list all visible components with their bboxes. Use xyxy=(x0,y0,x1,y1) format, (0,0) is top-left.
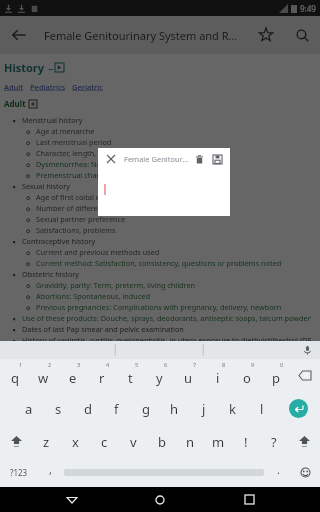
button[interactable]: Back xyxy=(55,487,89,512)
button[interactable]: Delete xyxy=(190,150,208,168)
button[interactable]: ! xyxy=(232,425,260,458)
button[interactable]: . xyxy=(266,458,290,487)
button[interactable]: s xyxy=(44,392,73,425)
staticText: m xyxy=(212,433,225,451)
button[interactable]: , xyxy=(38,458,62,487)
button[interactable]: 3 xyxy=(58,359,87,392)
button[interactable]: Use of these products: Douche, sprays, d… xyxy=(12,313,320,323)
button[interactable]: 9 xyxy=(232,359,261,392)
staticText: Obstetric history xyxy=(22,269,320,279)
button[interactable]: Satisfactions, problems xyxy=(26,225,320,235)
button[interactable]: Abortions: Spontaneous, induced xyxy=(26,291,320,301)
button[interactable]: Backspace xyxy=(290,359,320,392)
button[interactable]: Number of different partners xyxy=(26,203,320,213)
button[interactable]: Back xyxy=(0,16,38,54)
button[interactable]: Recent change in any of the following: B… xyxy=(12,346,320,356)
staticText: Recent change in any of the following: B… xyxy=(22,346,320,356)
staticText: l xyxy=(260,400,264,418)
button[interactable]: Search xyxy=(284,17,320,53)
staticText: Sexual partner preference xyxy=(36,214,320,224)
button[interactable]: Collapse section xyxy=(29,100,37,108)
button[interactable]: n xyxy=(176,425,204,458)
staticText: 5 xyxy=(135,361,139,368)
button[interactable]: Character, length, regularity of menses xyxy=(26,148,320,158)
button[interactable]: ? xyxy=(260,425,288,458)
button[interactable]: 2 xyxy=(29,359,58,392)
button[interactable]: Current and previous methods used xyxy=(26,247,320,257)
button[interactable]: Dysmenorrhea: Nature, severity, treatmen… xyxy=(26,159,320,169)
button[interactable]: j xyxy=(189,392,218,425)
staticText: Female Genitouri... xyxy=(124,154,190,164)
staticText: Abortions: Spontaneous, induced xyxy=(36,291,320,301)
button[interactable]: h xyxy=(160,392,189,425)
button[interactable]: x xyxy=(61,425,90,458)
button[interactable]: Save xyxy=(208,150,226,168)
staticText: v xyxy=(130,433,137,451)
staticText: , xyxy=(49,462,52,477)
button[interactable]: Space xyxy=(62,458,266,487)
button[interactable]: Contraceptive history xyxy=(12,236,320,246)
button[interactable]: Close xyxy=(102,150,120,168)
button[interactable]: Current method: Satisfaction, consistenc… xyxy=(26,258,320,268)
staticText: 9:49 xyxy=(300,3,316,14)
button[interactable]: Risk factors for HIV, safer sex practice… xyxy=(12,379,320,389)
button[interactable]: History of vaginitis, cystitis, pyelonep… xyxy=(12,335,320,345)
button[interactable]: Previous pregnancies: Complications with… xyxy=(26,302,320,312)
button[interactable]: Sexual partner preference xyxy=(26,214,320,224)
button[interactable]: Shift xyxy=(0,425,32,458)
button[interactable]: Favorite xyxy=(248,17,284,53)
button[interactable]: Obstetric history xyxy=(12,269,320,279)
button[interactable]: b xyxy=(148,425,176,458)
button[interactable]: Age at menarche xyxy=(26,126,320,136)
button[interactable]: Age of first coital experience xyxy=(26,192,320,202)
button[interactable]: 5 xyxy=(116,359,145,392)
button[interactable]: Last menstrual period xyxy=(26,137,320,147)
button[interactable]: z xyxy=(32,425,61,458)
staticText: h xyxy=(170,400,179,418)
button[interactable]: 7 xyxy=(174,359,203,392)
button[interactable]: Pediatrics xyxy=(30,82,66,92)
staticText: x xyxy=(72,433,79,451)
staticText: 2 xyxy=(48,361,52,368)
staticText: 6 xyxy=(164,361,168,368)
button[interactable]: a xyxy=(14,392,44,425)
button[interactable]: Sexual history xyxy=(12,181,320,191)
button[interactable]: Adult xyxy=(4,82,24,92)
staticText: Contraceptive history xyxy=(22,236,320,246)
button[interactable]: Premenstrual changes: Severity, treatmen… xyxy=(26,170,320,180)
button[interactable]: Home xyxy=(143,487,177,512)
button[interactable]: Gravidity, parity: Term, preterm, living… xyxy=(26,280,320,290)
button[interactable]: Geriatric xyxy=(72,82,103,92)
staticText: Risk factors for HIV, safer sex practice… xyxy=(22,379,320,389)
button[interactable]: l xyxy=(247,392,276,425)
button[interactable]: m xyxy=(204,425,232,458)
button[interactable]: History of gynecologic/urologic surgerie… xyxy=(12,357,320,367)
button[interactable]: v xyxy=(119,425,148,458)
button[interactable]: d xyxy=(73,392,102,425)
button[interactable]: Emoji xyxy=(290,458,320,487)
button[interactable]: 8 xyxy=(203,359,232,392)
button[interactable]: 4 xyxy=(87,359,116,392)
staticText: History of sexual assault, incest, stage… xyxy=(22,368,320,378)
staticText: Adult xyxy=(4,82,24,92)
staticText: Last menstrual period xyxy=(36,137,320,147)
button[interactable]: Dates of last Pap smear and pelvic exami… xyxy=(12,324,320,334)
button[interactable]: Enter xyxy=(276,392,320,425)
button[interactable]: k xyxy=(218,392,247,425)
staticText: 0 xyxy=(280,361,284,368)
button[interactable]: 0 xyxy=(261,359,290,392)
staticText: Previous pregnancies: Complications with… xyxy=(36,302,320,312)
button[interactable]: Menstrual history xyxy=(12,115,320,125)
button[interactable]: f xyxy=(102,392,131,425)
button[interactable]: History of sexual assault, incest, stage… xyxy=(12,368,320,378)
button[interactable]: Shift xyxy=(288,425,320,458)
button[interactable]: 1 xyxy=(0,359,29,392)
button[interactable]: 6 xyxy=(145,359,174,392)
button[interactable]: Expand xyxy=(55,63,64,72)
button[interactable]: ?123 xyxy=(0,458,38,487)
staticText: Gravidity, parity: Term, preterm, living… xyxy=(36,280,320,290)
button[interactable]: Recent apps xyxy=(232,487,266,512)
button[interactable]: Voice input xyxy=(300,343,314,357)
button[interactable]: c xyxy=(90,425,119,458)
button[interactable]: g xyxy=(131,392,160,425)
